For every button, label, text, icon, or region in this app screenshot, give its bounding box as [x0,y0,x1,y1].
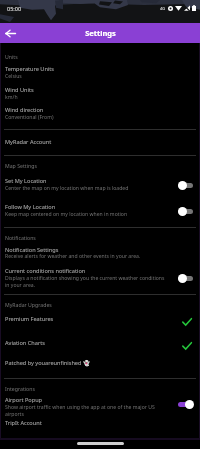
staticText: Notification Settings [5,246,167,254]
staticText: Displays a notification showing you the … [5,275,167,289]
button[interactable]: Back [0,23,20,43]
button[interactable]: Toggle off [171,271,199,285]
button[interactable] [0,63,200,83]
button[interactable] [0,199,200,223]
button[interactable]: Enabled [178,339,196,353]
staticText: MyRadar Account [5,138,167,146]
button[interactable] [0,417,200,434]
staticText: Set My Location [5,177,167,185]
button[interactable] [0,135,200,152]
staticText: Receive alerts for weather and other eve… [5,253,167,260]
button[interactable] [0,105,200,125]
button[interactable]: Enabled [178,315,196,329]
staticText: Aviation Charts [5,339,167,347]
staticText: Units [5,53,167,60]
staticText: MyRadar Upgrades [5,301,167,308]
staticText: Current conditions notification [5,267,167,275]
staticText: Wind Units [5,86,167,94]
button[interactable]: Toggle off [171,204,199,218]
staticText: Wind direction [5,106,167,114]
staticText: Settings [85,28,116,38]
button[interactable] [0,392,200,416]
staticText: Premium Features [5,315,167,323]
staticText: Conventional (From) [5,114,167,121]
staticText: Integrations [5,385,167,392]
button[interactable]: Toggle on [171,397,199,411]
button[interactable] [0,334,200,354]
button[interactable] [0,310,200,330]
staticText: Notifications [5,234,167,241]
staticText: Follow My Location [5,203,167,211]
button[interactable] [0,263,200,288]
button[interactable]: Toggle off [171,178,199,192]
staticText: TripIt Account [5,419,167,427]
staticText: 05:00 [7,5,22,12]
button[interactable] [0,242,200,261]
staticText: Patched by youareunfinished 👻 [5,359,167,367]
staticText: Center the map on my location when map i… [5,185,167,192]
button[interactable] [0,84,200,104]
staticText: km/h [5,94,167,101]
staticText: Map Settings [5,162,167,169]
button[interactable] [0,355,200,372]
staticText: Keep map centered on my location when in… [5,211,167,218]
staticText: Airport Popup [5,396,167,404]
button[interactable] [0,173,200,197]
staticText: Temperature Units [5,65,167,73]
staticText: Celsius [5,73,167,80]
staticText: Show airport traffic when using the app … [5,404,167,418]
staticText: 4G [160,6,166,11]
